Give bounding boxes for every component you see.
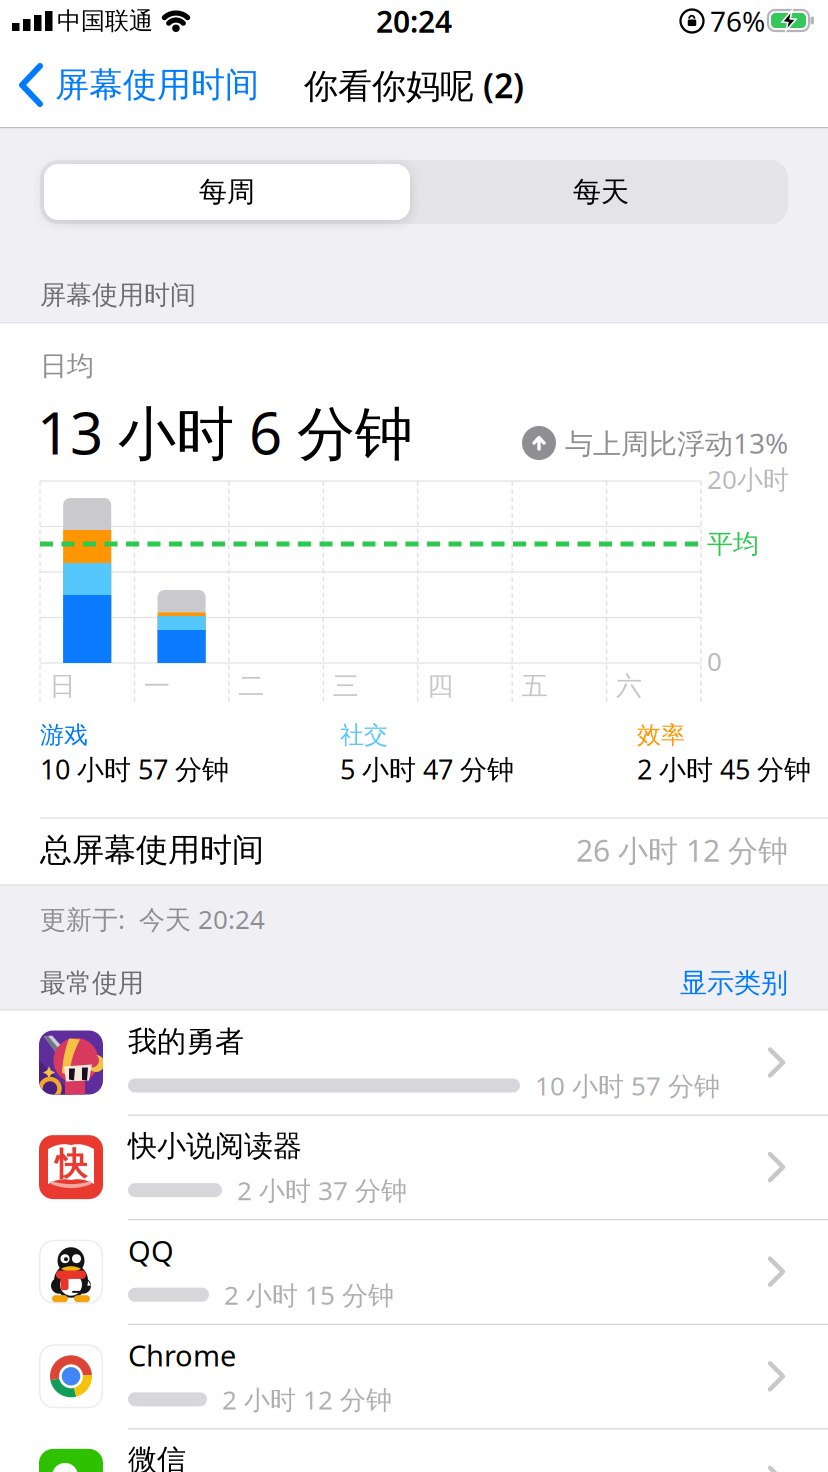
staticText: 中国联通: [57, 6, 153, 36]
button[interactable]: QQ: [0, 1220, 828, 1324]
staticText: 与上周比浮动13%: [565, 424, 788, 462]
staticText: 76%: [710, 2, 765, 40]
staticText: 一: [144, 670, 170, 702]
button[interactable]: 屏幕使用时间: [20, 55, 259, 115]
staticText: 2 小时 12 分钟: [222, 1382, 392, 1416]
staticText: 四: [427, 670, 453, 702]
staticText: 每天: [573, 175, 629, 209]
button[interactable]: 微信: [0, 1429, 828, 1472]
staticText: 最常使用: [40, 967, 144, 999]
staticText: 日: [49, 670, 75, 702]
staticText: 20:24: [376, 1, 452, 41]
staticText: 0: [707, 644, 722, 678]
button[interactable]: 显示类别: [670, 955, 788, 1011]
staticText: 二: [238, 670, 264, 702]
staticText: 微信: [128, 1442, 186, 1472]
staticText: 日均: [40, 349, 94, 383]
button[interactable]: 每周: [44, 164, 410, 220]
button[interactable]: 快: [0, 1115, 828, 1219]
staticText: 10 小时 57 分钟: [40, 751, 229, 787]
staticText: QQ: [128, 1231, 174, 1270]
staticText: Chrome: [128, 1336, 236, 1374]
staticText: 26 小时 12 分钟: [576, 830, 788, 870]
staticText: 效率: [637, 720, 685, 750]
staticText: 你看你妈呢 (2): [304, 62, 524, 108]
staticText: 总屏幕使用时间: [40, 830, 264, 870]
staticText: 屏幕使用时间: [40, 279, 196, 311]
staticText: 显示类别: [680, 966, 788, 1000]
staticText: 13 小时 6 分钟: [37, 393, 413, 470]
button[interactable]: 我的勇者: [0, 1010, 828, 1114]
staticText: 五: [522, 670, 548, 702]
staticText: 快: [55, 1144, 87, 1184]
staticText: 平均: [707, 528, 759, 560]
button[interactable]: Chrome: [0, 1324, 828, 1428]
staticText: 我的勇者: [128, 1024, 244, 1059]
staticText: 三: [333, 670, 359, 702]
staticText: 屏幕使用时间: [55, 64, 259, 106]
staticText: 5 小时 47 分钟: [340, 751, 514, 787]
staticText: 更新于: 今天 20:24: [40, 902, 265, 936]
staticText: 10 小时 57 分钟: [535, 1068, 720, 1103]
staticText: 社交: [340, 720, 388, 750]
staticText: 2 小时 37 分钟: [237, 1173, 407, 1207]
staticText: 六: [616, 670, 642, 702]
button[interactable]: 每天: [418, 164, 784, 220]
staticText: 快小说阅读器: [128, 1128, 302, 1164]
staticText: 2 小时 15 分钟: [224, 1277, 394, 1312]
staticText: 游戏: [40, 720, 88, 750]
staticText: 每周: [199, 175, 255, 209]
staticText: 2 小时 45 分钟: [637, 751, 811, 787]
staticText: 20小时: [707, 462, 789, 496]
